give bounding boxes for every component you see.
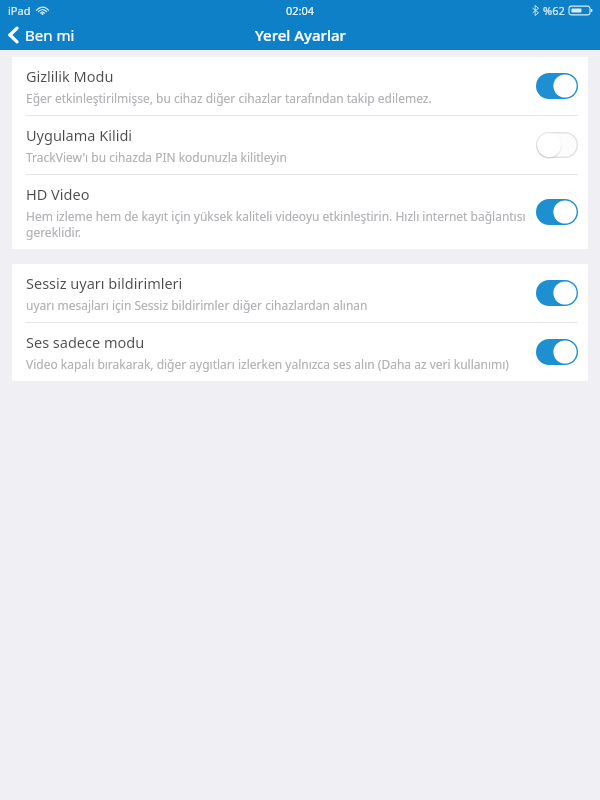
staticText: Sessiz uyarı bildirimleri <box>26 273 183 293</box>
button[interactable]: Açık anahtar <box>536 73 578 99</box>
staticText: Video kapalı bırakarak, diğer aygıtları … <box>26 356 509 372</box>
button[interactable]: Ses sadece modu <box>12 323 588 381</box>
button[interactable]: Sessiz uyarı bildirimleri <box>12 264 588 322</box>
staticText: Gizlilik Modu <box>26 66 114 86</box>
staticText: Ses sadece modu <box>26 332 145 352</box>
button[interactable]: Gizlilik Modu <box>12 57 588 115</box>
staticText: Uygulama Kilidi <box>26 125 133 145</box>
staticText: %62 <box>543 3 565 18</box>
button[interactable]: Ben mi <box>0 21 89 49</box>
button[interactable]: Açık anahtar <box>536 199 578 225</box>
staticText: TrackView'ı bu cihazda PIN kodunuzla kil… <box>26 149 287 165</box>
staticText: Hem izleme hem de kayıt için yüksek kali… <box>26 208 528 240</box>
button[interactable]: Uygulama Kilidi <box>12 116 588 174</box>
button[interactable]: Açık anahtar <box>536 280 578 306</box>
staticText: Ben mi <box>25 25 75 45</box>
button[interactable]: Açık anahtar <box>536 339 578 365</box>
button[interactable]: HD Video <box>12 175 588 249</box>
staticText: HD Video <box>26 184 90 204</box>
staticText: 02:04 <box>286 3 315 18</box>
staticText: iPad <box>8 3 31 18</box>
staticText: uyarı mesajları için Sessiz bildirimler … <box>26 297 368 313</box>
staticText: Yerel Ayarlar <box>255 25 346 45</box>
staticText: Eğer etkinleştirilmişse, bu cihaz diğer … <box>26 90 432 106</box>
button[interactable]: Kapalı anahtar <box>536 132 578 158</box>
